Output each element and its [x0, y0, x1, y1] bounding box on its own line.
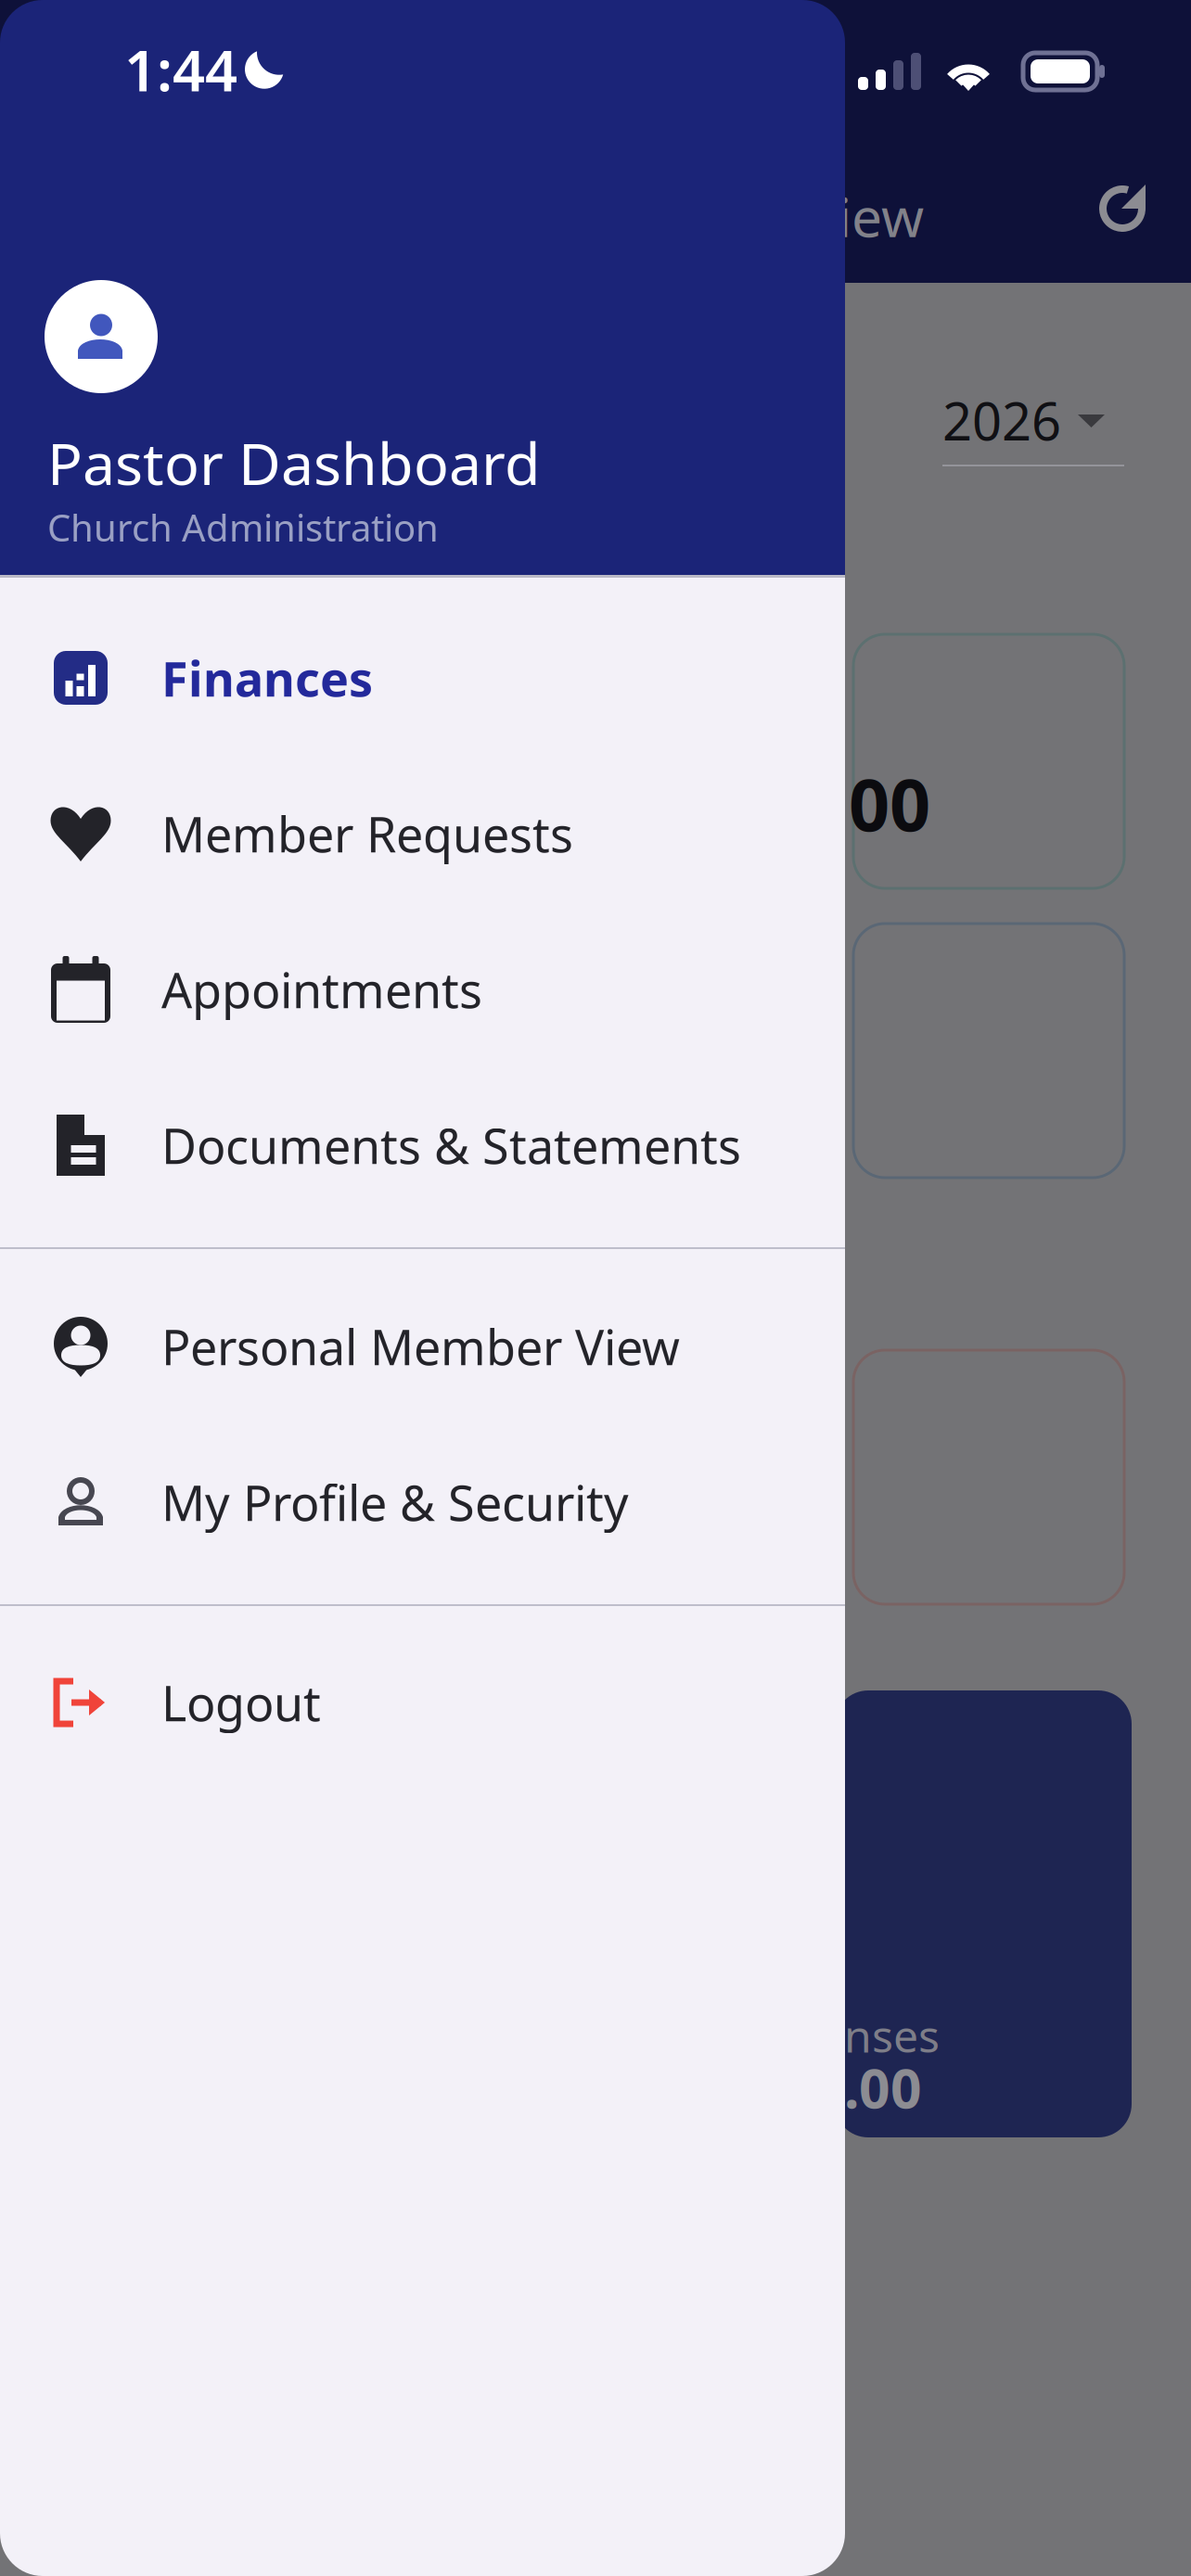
staticText: 00 [849, 756, 930, 851]
staticText: 2026 [942, 386, 1061, 455]
staticText: nses [844, 2006, 940, 2065]
staticText: Pastor Dashboard [47, 424, 541, 501]
staticText: Logout [161, 1671, 321, 1735]
staticText: Documents & Statements [161, 1113, 741, 1177]
button[interactable]: Finances [0, 600, 845, 756]
button[interactable]: Appointments [0, 912, 845, 1067]
staticText: Personal Member View [161, 1314, 680, 1379]
staticText: Church Administration [47, 503, 439, 552]
button[interactable]: Logout [0, 1625, 845, 1780]
staticText: 1:44 [124, 32, 237, 107]
staticText: Member Requests [161, 802, 573, 866]
button[interactable]: My Profile & Security [0, 1424, 845, 1580]
button[interactable]: Documents & Statements [0, 1067, 845, 1223]
staticText: Financial Overview [449, 180, 924, 252]
staticText: .00 [844, 2051, 922, 2123]
button[interactable]: Member Requests [0, 756, 845, 912]
staticText: Finances [161, 646, 373, 710]
button[interactable]: Refresh [1102, 185, 1146, 233]
staticText: Appointments [161, 957, 482, 1021]
button[interactable]: Personal Member View [0, 1269, 845, 1424]
staticText: My Profile & Security [161, 1470, 629, 1534]
